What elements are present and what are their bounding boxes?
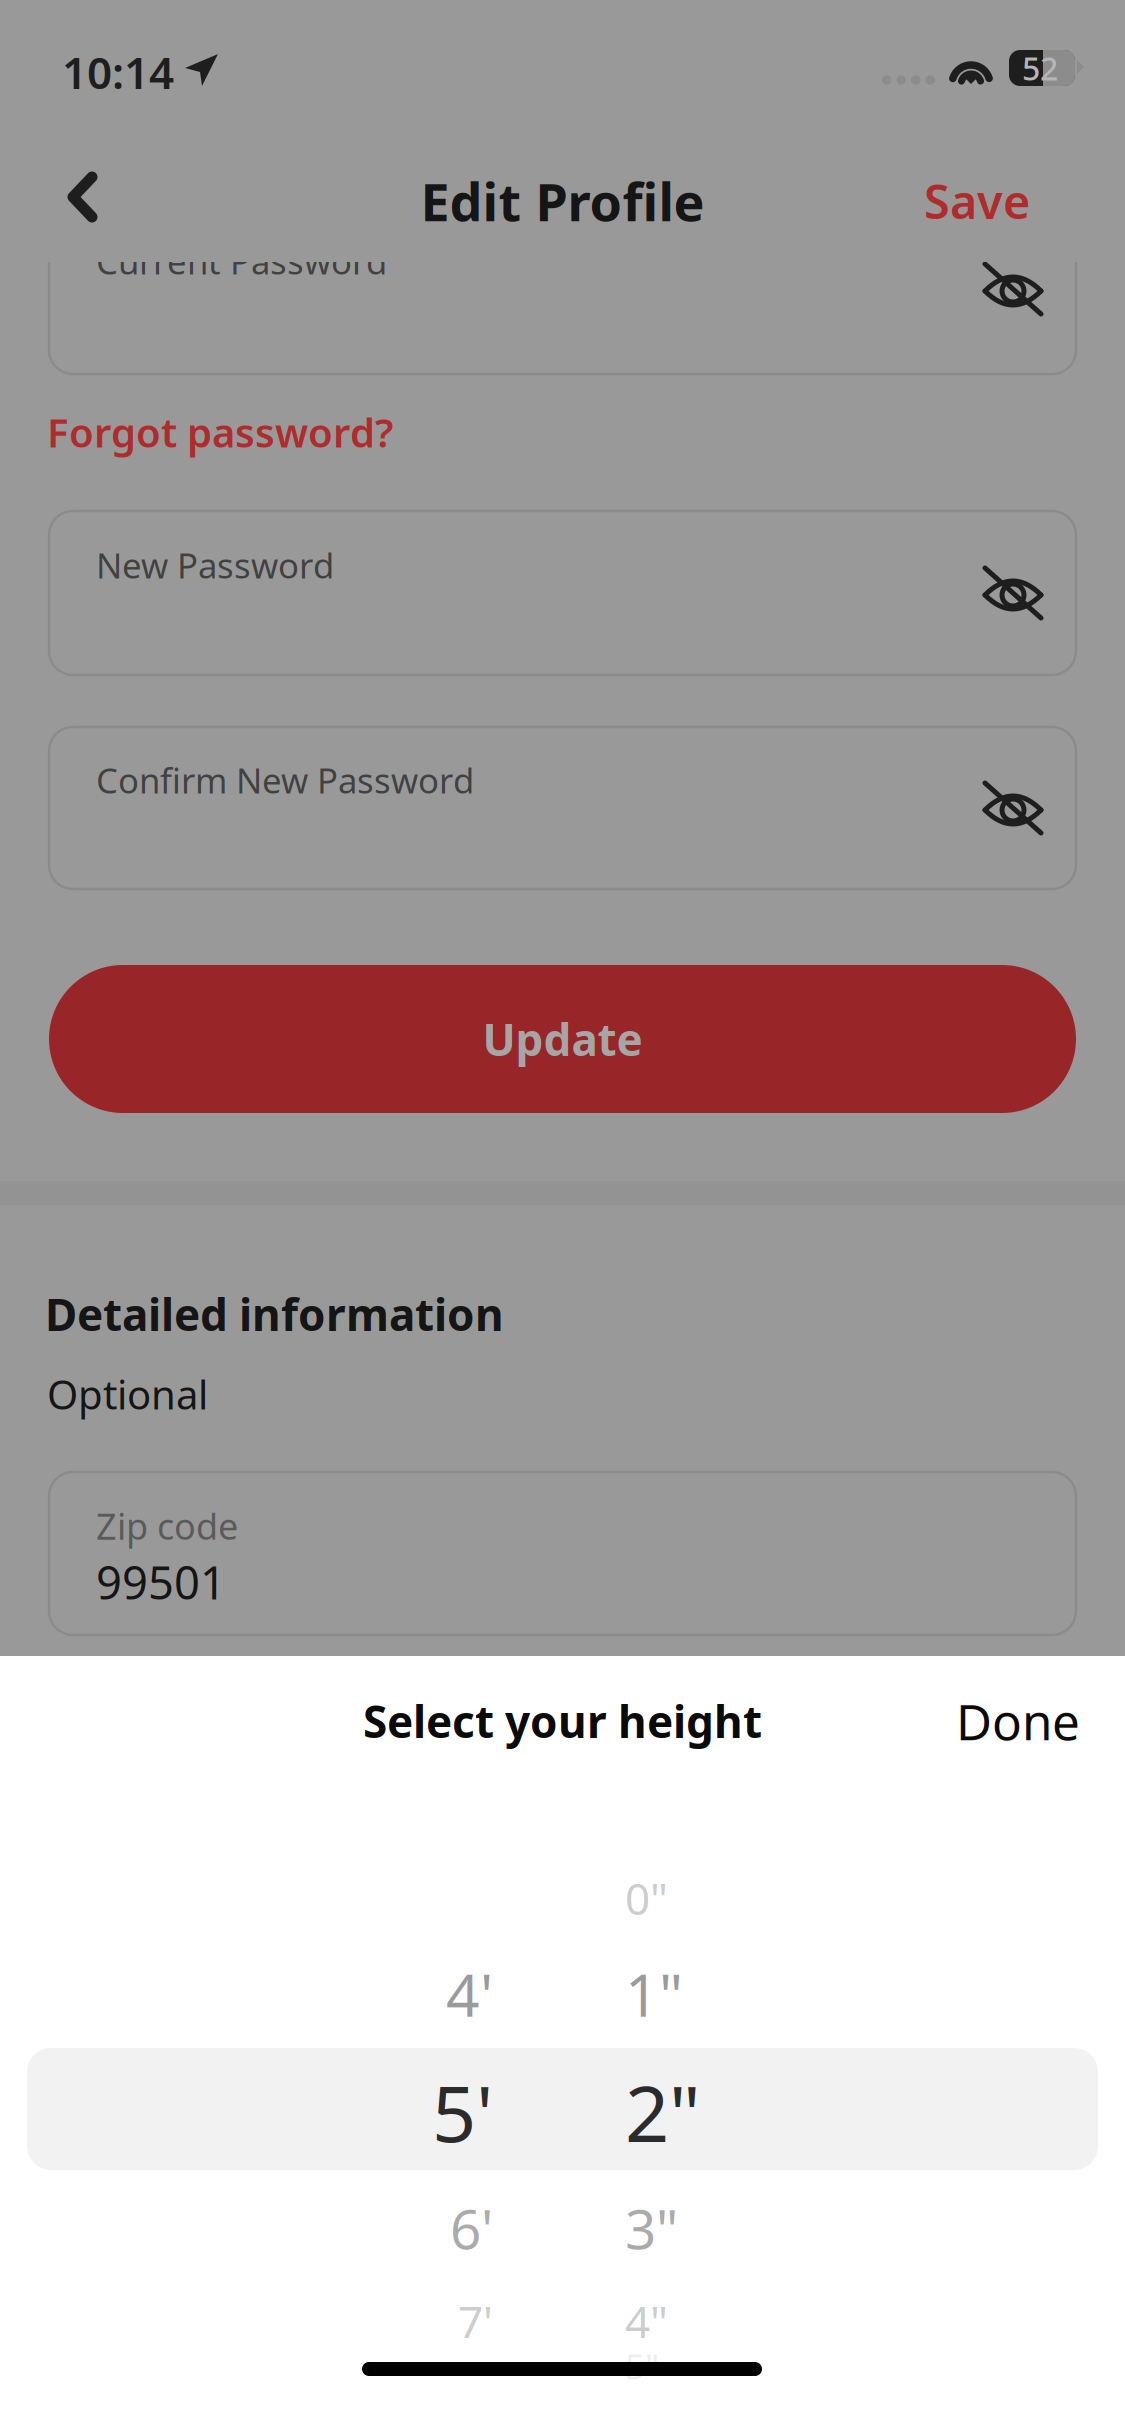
button[interactable]: Save	[884, 162, 1030, 240]
staticText: 7'	[458, 2292, 493, 2350]
staticText: Detailed information	[45, 1285, 504, 1343]
staticText: Forgot password?	[47, 405, 393, 458]
staticText: 52	[1022, 47, 1058, 89]
button[interactable]: Show password	[983, 780, 1043, 836]
staticText: Select your height	[363, 1692, 762, 1750]
staticText: 5"	[625, 2343, 659, 2389]
staticText: 1"	[625, 1955, 683, 2033]
button[interactable]: Done	[864, 1676, 1080, 1766]
staticText: Edit Profile	[420, 166, 704, 236]
staticText: 3"	[625, 2192, 678, 2264]
staticText: 6'	[450, 2192, 493, 2264]
staticText: 2"	[625, 2061, 701, 2163]
button[interactable]: Show password	[983, 565, 1043, 621]
staticText: 4"	[625, 2292, 668, 2350]
button[interactable]: Update	[49, 965, 1076, 1113]
staticText: Zip code	[96, 1502, 238, 1550]
staticText: 4'	[446, 1955, 493, 2033]
staticText: Confirm New Password	[96, 757, 474, 803]
button[interactable]: Show password	[983, 261, 1043, 317]
staticText: 10:14	[62, 43, 174, 101]
button[interactable]: Back	[67, 171, 98, 223]
staticText: 5'	[432, 2061, 493, 2163]
staticText: 99501	[96, 1552, 226, 1612]
button[interactable]: Forgot password?	[47, 400, 607, 464]
staticText: Update	[482, 1010, 642, 1068]
staticText: New Password	[96, 542, 334, 588]
staticText: 0"	[625, 1869, 668, 1927]
staticText: Done	[956, 1688, 1080, 1754]
staticText: Optional	[47, 1367, 208, 1420]
staticText: Current Password	[96, 238, 387, 284]
staticText: Save	[924, 170, 1030, 232]
